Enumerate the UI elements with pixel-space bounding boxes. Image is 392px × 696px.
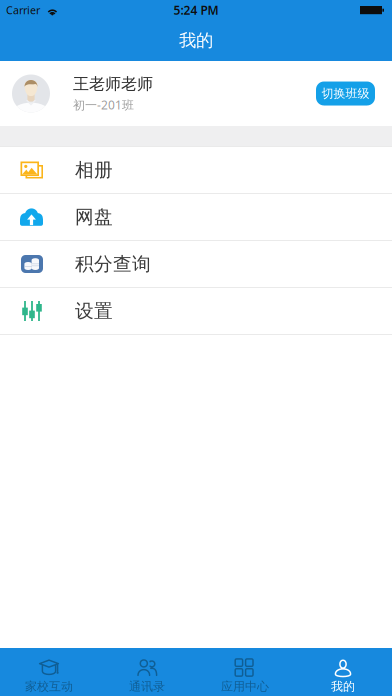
- staticText: 通讯录: [129, 679, 165, 694]
- staticText: 我的: [179, 30, 213, 51]
- button[interactable]: 我的: [294, 648, 392, 696]
- staticText: 相册: [75, 158, 113, 181]
- button[interactable]: 相册: [0, 147, 392, 194]
- staticText: 初一-201班: [73, 97, 134, 113]
- button[interactable]: 设置: [0, 288, 392, 335]
- button[interactable]: 网盘: [0, 194, 392, 241]
- staticText: 应用中心: [221, 679, 269, 694]
- button[interactable]: 积分查询: [0, 241, 392, 288]
- staticText: Carrier: [6, 3, 40, 17]
- staticText: 我的: [331, 679, 355, 694]
- button[interactable]: 通讯录: [98, 648, 196, 696]
- staticText: 网盘: [75, 205, 113, 228]
- button[interactable]: 王老师老师: [0, 61, 392, 126]
- staticText: 积分查询: [75, 252, 151, 275]
- staticText: 设置: [75, 299, 113, 322]
- staticText: 5:24 PM: [173, 2, 218, 18]
- staticText: 切换班级: [321, 86, 369, 101]
- staticText: 王老师老师: [73, 74, 153, 94]
- button[interactable]: 应用中心: [196, 648, 294, 696]
- staticText: 家校互动: [25, 679, 73, 694]
- button[interactable]: 家校互动: [0, 648, 98, 696]
